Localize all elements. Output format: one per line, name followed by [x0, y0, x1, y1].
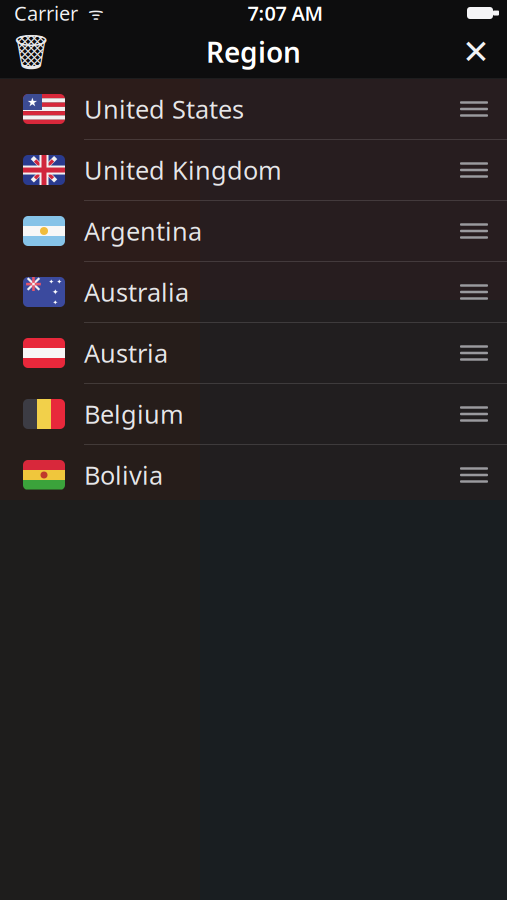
staticText: ✕ [24, 272, 43, 297]
staticText: ✦ [52, 287, 59, 297]
staticText: Bolivia [84, 458, 163, 492]
staticText: ᯤ [78, 1, 104, 24]
staticText: ✦ ✦ [48, 278, 62, 285]
staticText: ✕ [29, 150, 58, 190]
staticText: 🗑 [10, 33, 52, 71]
button[interactable]: Bolivia [0, 445, 507, 506]
staticText: ✛ [25, 273, 42, 296]
staticText: Argentina [84, 214, 202, 248]
staticText: ✕ [25, 144, 63, 196]
button[interactable]: Close [449, 26, 503, 78]
button[interactable]: Argentina [0, 201, 507, 262]
button[interactable]: Delete [4, 26, 58, 78]
staticText: Belgium [84, 397, 184, 431]
button[interactable]: ✕ [0, 140, 507, 201]
staticText: Carrier [14, 0, 78, 26]
staticText: ✕ [462, 33, 490, 71]
staticText: 7:07 AM [247, 0, 323, 26]
button[interactable]: Austria [0, 323, 507, 384]
button[interactable]: Belgium [0, 384, 507, 445]
button[interactable]: ✕ [0, 262, 507, 323]
staticText: Region [206, 33, 301, 71]
staticText: ✦ [52, 298, 58, 306]
button[interactable]: ★ [0, 79, 507, 140]
staticText: United States [84, 92, 244, 126]
staticText: United Kingdom [84, 153, 282, 187]
staticText: Austria [84, 336, 168, 370]
staticText: Australia [84, 275, 189, 309]
staticText: ★ [27, 95, 38, 109]
